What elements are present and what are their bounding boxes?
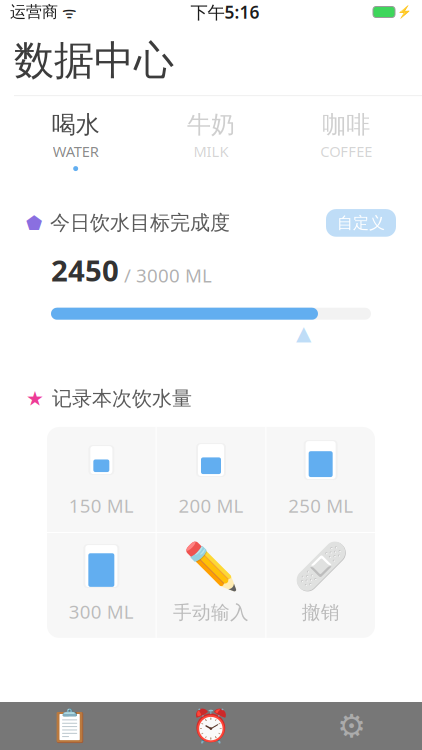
staticText: 手动输入 (173, 601, 249, 624)
button[interactable]: 🩹 (266, 533, 375, 638)
button[interactable]: 150 ML (47, 427, 156, 532)
staticText: 牛奶 (187, 110, 235, 140)
staticText: 记录本次饮水量 (52, 386, 192, 411)
staticText: 运营商 (10, 2, 58, 22)
button[interactable]: 喝水 (8, 106, 143, 175)
staticText: 自定义 (337, 213, 385, 233)
staticText: 数据中心 (14, 36, 174, 85)
staticText: ⚙ (337, 708, 366, 744)
staticText: ᯤ (58, 1, 77, 23)
staticText: COFFEE (320, 142, 372, 161)
staticText: 250 ML (288, 493, 353, 518)
button[interactable]: 记录 (0, 702, 141, 750)
staticText: WATER (53, 142, 99, 161)
button[interactable]: 250 ML (266, 427, 375, 532)
staticText: 下午5:16 (190, 0, 259, 23)
staticText: ⏰ (191, 708, 231, 744)
button[interactable]: 200 ML (157, 427, 265, 532)
staticText: 🩹 (293, 541, 349, 593)
staticText: ⬟ (26, 212, 42, 233)
button[interactable]: 自定义 (326, 209, 396, 237)
staticText: ★ (26, 387, 44, 410)
staticText: 今日饮水目标完成度 (50, 211, 230, 235)
staticText: 150 ML (69, 493, 134, 518)
staticText: 📋 (50, 708, 90, 744)
button[interactable]: ✏️ (157, 533, 265, 638)
button[interactable]: 300 ML (47, 533, 156, 638)
staticText: / 3000 ML (124, 263, 212, 288)
button[interactable]: 设置 (281, 702, 422, 750)
staticText: 咖啡 (322, 110, 370, 140)
staticText: MILK (193, 142, 228, 161)
staticText: ▲ (296, 322, 311, 344)
staticText: 撤销 (302, 601, 340, 624)
button[interactable]: 牛奶 (143, 106, 279, 175)
button[interactable]: 咖啡 (279, 106, 414, 175)
staticText: 300 ML (69, 599, 134, 624)
staticText: 喝水 (52, 110, 100, 140)
button[interactable]: 提醒 (141, 702, 281, 750)
staticText: 200 ML (178, 493, 243, 518)
staticText: ✏️ (183, 541, 239, 593)
staticText: ⚡ (397, 5, 412, 19)
staticText: 2450 (51, 251, 119, 290)
